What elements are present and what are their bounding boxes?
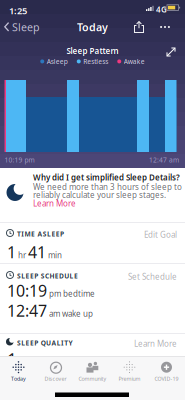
staticText: hr [18, 250, 26, 260]
button[interactable]: SLEEP SCHEDULE [0, 263, 185, 333]
staticText: pm bedtime [49, 288, 95, 299]
staticText: 4G [156, 4, 167, 15]
button[interactable]: Expand chart [162, 43, 180, 61]
staticText: Discover [44, 375, 66, 382]
staticText: 10:19 [7, 280, 47, 301]
button[interactable]: TIME ASLEEP [0, 222, 185, 263]
staticText: Edit Goal [144, 229, 177, 240]
button[interactable]: Share [130, 14, 148, 40]
button[interactable]: Back [4, 14, 40, 40]
staticText: 10:19 pm [4, 155, 34, 164]
staticText: Premium [118, 375, 140, 382]
button[interactable]: Today [0, 358, 37, 384]
staticText: Today [11, 375, 26, 382]
staticText: Sleep Pattern [66, 45, 118, 56]
staticText: Awake [124, 57, 145, 66]
staticText: 1 [7, 348, 17, 371]
staticText: We need more than 3 hours of sleep to [33, 181, 182, 192]
button[interactable]: More options [155, 14, 175, 40]
staticText: am wake up [49, 308, 93, 319]
button[interactable]: Discover [37, 358, 74, 384]
staticText: 1 [7, 241, 16, 263]
staticText: min [48, 250, 62, 260]
staticText: Restless [83, 57, 108, 66]
staticText: SLEEP SCHEDULE [17, 272, 78, 280]
staticText: TIME ASLEEP [17, 230, 64, 238]
button[interactable]: Learn More [33, 198, 76, 209]
staticText: Learn More [134, 338, 177, 349]
staticText: Community [78, 375, 106, 382]
button[interactable]: SLEEP QUALITY [0, 333, 185, 356]
staticText: 12:47 [7, 300, 47, 321]
staticText: SLEEP QUALITY [17, 339, 73, 347]
staticText: 41 [28, 241, 46, 263]
staticText: 1:25 [9, 4, 27, 17]
staticText: Why did I get simplified Sleep Details? [33, 172, 180, 183]
button[interactable]: Edit Goal [144, 229, 177, 240]
staticText: Learn More [33, 198, 76, 209]
staticText: Asleep [47, 57, 68, 66]
staticText: Sleep [12, 20, 40, 34]
staticText: Today [77, 20, 108, 34]
button[interactable]: Set Schedule [128, 271, 177, 282]
staticText: COVID-19 [154, 375, 178, 382]
button[interactable]: Premium [111, 358, 148, 384]
button[interactable]: COVID-19 [148, 358, 185, 384]
staticText: 12:47 am [149, 155, 179, 164]
button[interactable]: Learn More [134, 338, 177, 349]
staticText: reliably calculate your sleep stages. [33, 189, 166, 200]
button[interactable]: Community [74, 358, 111, 384]
staticText: Set Schedule [128, 271, 177, 282]
